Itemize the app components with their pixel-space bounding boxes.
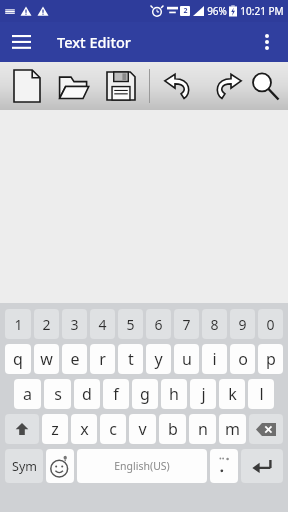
button[interactable]: 0 <box>258 309 283 339</box>
button[interactable]: 5 <box>118 309 143 339</box>
button[interactable]: Shift <box>5 414 39 444</box>
button[interactable]: v <box>129 414 156 444</box>
button[interactable]: Period <box>210 449 238 483</box>
staticText: m <box>225 418 240 440</box>
button[interactable]: q <box>5 344 31 374</box>
staticText: g <box>140 383 150 405</box>
staticText: s <box>54 383 62 405</box>
button[interactable]: Symbols <box>5 449 43 483</box>
button[interactable]: Emoji <box>46 449 74 483</box>
staticText: 4 <box>98 315 107 334</box>
button[interactable]: c <box>100 414 126 444</box>
button[interactable]: z <box>42 414 68 444</box>
button[interactable]: m <box>219 414 246 444</box>
staticText: y <box>154 348 163 370</box>
button[interactable]: 4 <box>90 309 115 339</box>
button[interactable]: 3 <box>62 309 87 339</box>
staticText: Sym <box>12 458 37 475</box>
staticText: p <box>266 348 276 370</box>
button[interactable]: g <box>132 379 158 409</box>
button[interactable]: j <box>190 379 216 409</box>
button[interactable]: Search <box>250 63 280 109</box>
button[interactable]: 1 <box>5 309 31 339</box>
button[interactable]: a <box>14 379 41 409</box>
button[interactable]: Navigation menu <box>4 25 38 59</box>
button[interactable]: s <box>44 379 71 409</box>
button[interactable]: p <box>258 344 283 374</box>
button[interactable]: 9 <box>230 309 255 339</box>
button[interactable]: Backspace <box>249 414 283 444</box>
staticText: t <box>128 348 134 370</box>
staticText: 0 <box>266 315 275 334</box>
button[interactable]: Redo <box>206 63 250 109</box>
button[interactable]: y <box>146 344 171 374</box>
button[interactable]: Space, English(US) <box>77 449 207 483</box>
staticText: h <box>169 383 179 405</box>
staticText: English(US) <box>114 459 170 473</box>
staticText: 8 <box>210 315 219 334</box>
button[interactable]: l <box>248 379 274 409</box>
button[interactable]: New file <box>5 63 49 109</box>
staticText: 2 <box>183 6 188 16</box>
button[interactable]: h <box>161 379 187 409</box>
button[interactable]: u <box>174 344 199 374</box>
staticText: r <box>99 348 106 370</box>
button[interactable]: 6 <box>146 309 171 339</box>
button[interactable]: 2 <box>34 309 59 339</box>
button[interactable]: e <box>62 344 87 374</box>
staticText: j <box>201 383 206 405</box>
staticText: z <box>51 418 59 440</box>
staticText: c <box>109 418 117 440</box>
staticText: o <box>238 348 248 370</box>
staticText: 3 <box>70 315 79 334</box>
button[interactable]: f <box>103 379 129 409</box>
staticText: n <box>198 418 208 440</box>
staticText: v <box>138 418 147 440</box>
button[interactable]: r <box>90 344 115 374</box>
button[interactable]: Enter <box>241 449 283 483</box>
staticText: x <box>80 418 89 440</box>
staticText: 5 <box>126 315 135 334</box>
staticText: Text Editor <box>57 32 131 52</box>
button[interactable]: Undo <box>156 63 200 109</box>
button[interactable]: n <box>189 414 216 444</box>
button[interactable]: k <box>219 379 245 409</box>
staticText: i <box>212 348 217 370</box>
staticText: 1 <box>14 315 23 334</box>
staticText: f <box>113 383 119 405</box>
button[interactable]: t <box>118 344 143 374</box>
button[interactable]: 8 <box>202 309 227 339</box>
button[interactable]: Save file <box>99 63 143 109</box>
staticText: b <box>168 418 178 440</box>
button[interactable]: o <box>230 344 255 374</box>
staticText: a <box>23 383 32 405</box>
staticText: 10:21 PM <box>240 4 284 18</box>
staticText: 96% <box>207 4 227 18</box>
button[interactable]: b <box>159 414 186 444</box>
button[interactable]: w <box>34 344 59 374</box>
staticText: u <box>182 348 192 370</box>
staticText: 9 <box>238 315 247 334</box>
button[interactable]: More options <box>250 25 284 59</box>
staticText: 7 <box>182 315 191 334</box>
button[interactable]: x <box>71 414 97 444</box>
button[interactable]: 7 <box>174 309 199 339</box>
staticText: d <box>82 383 92 405</box>
staticText: 2 <box>42 315 51 334</box>
staticText: q <box>13 348 23 370</box>
staticText: 6 <box>154 315 163 334</box>
staticText: k <box>228 383 237 405</box>
button[interactable]: i <box>202 344 227 374</box>
staticText: w <box>40 348 53 370</box>
staticText: l <box>259 383 264 405</box>
staticText: e <box>70 348 80 370</box>
button[interactable]: Open file <box>52 63 96 109</box>
button[interactable]: d <box>74 379 100 409</box>
